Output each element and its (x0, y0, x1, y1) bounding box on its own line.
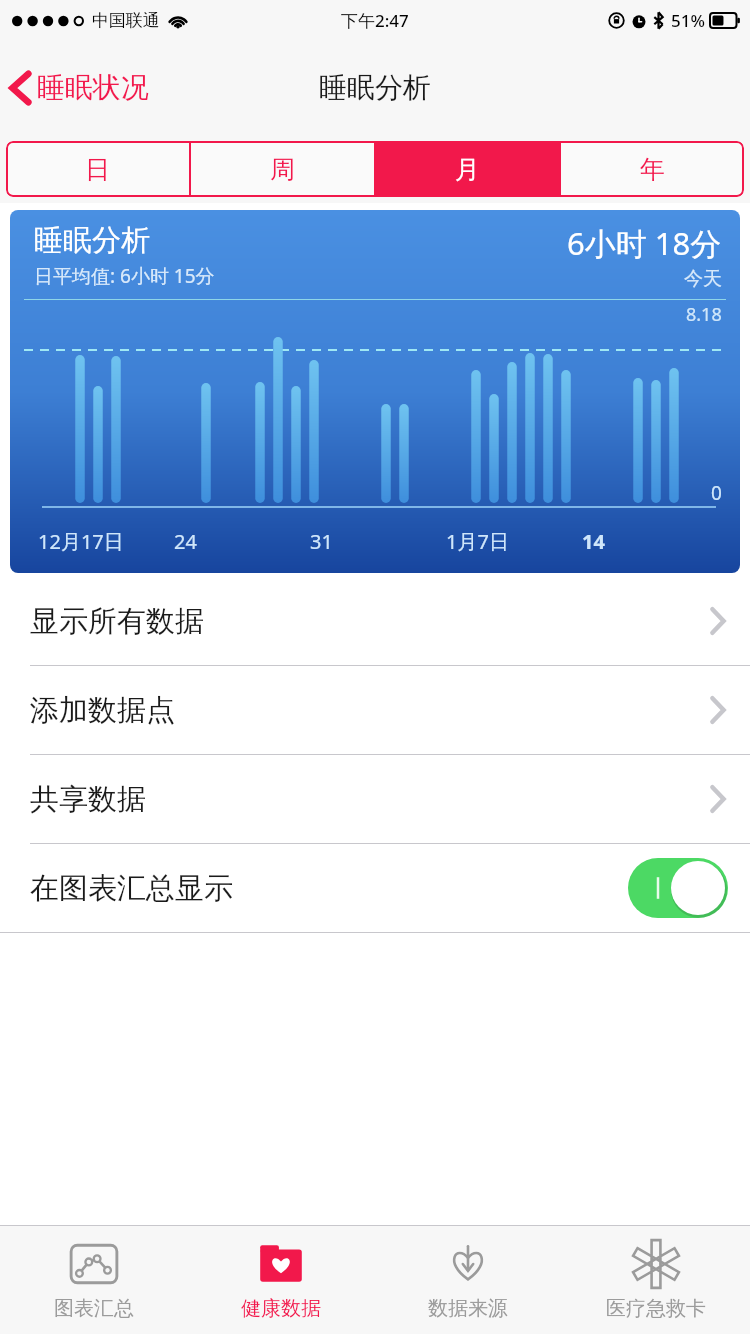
button[interactable]: 在图表汇总显示 (0, 844, 750, 932)
button[interactable]: 健康数据 (187, 1226, 374, 1334)
staticText: 51% (671, 9, 705, 32)
staticText: 图表汇总 (54, 1296, 134, 1321)
staticText: 24 (174, 528, 197, 555)
button[interactable]: 添加数据点 (0, 666, 750, 754)
staticText: 医疗急救卡 (606, 1296, 706, 1321)
staticText: 在图表汇总显示 (30, 870, 628, 907)
button[interactable]: 月 (376, 141, 559, 197)
button[interactable]: 睡眠状况 (0, 62, 163, 113)
button[interactable]: 在图表汇总显示开关 (628, 858, 728, 918)
button[interactable]: 图表汇总 (0, 1226, 187, 1334)
button[interactable]: 睡眠分析 (10, 210, 740, 573)
staticText: 周 (270, 154, 295, 185)
button[interactable]: 日 (6, 141, 189, 197)
staticText: 日 (85, 154, 110, 185)
staticText: 0 (711, 480, 722, 506)
staticText: 睡眠分析 (319, 70, 431, 105)
staticText: 6小时 18分 (567, 222, 722, 264)
staticText: 健康数据 (241, 1296, 321, 1321)
staticText: 睡眠状况 (37, 70, 149, 105)
staticText: 12月17日 (38, 528, 124, 555)
button[interactable]: 共享数据 (0, 755, 750, 843)
staticText: 31 (310, 528, 333, 555)
staticText: 年 (640, 154, 665, 185)
staticText: 中国联通 (92, 10, 160, 31)
button[interactable]: 显示所有数据 (0, 577, 750, 665)
staticText: 今天 (684, 267, 722, 291)
staticText: 8.18 (686, 302, 722, 327)
staticText: 下午2:47 (341, 9, 409, 32)
staticText: 1月7日 (446, 528, 509, 555)
staticText: 数据来源 (428, 1296, 508, 1321)
button[interactable]: 数据来源 (374, 1226, 562, 1334)
staticText: 月 (455, 154, 480, 185)
staticText: 日平均值: 6小时 15分 (34, 263, 215, 289)
staticText: 显示所有数据 (30, 603, 710, 640)
button[interactable]: 周 (191, 141, 374, 197)
staticText: 睡眠分析 (34, 222, 150, 259)
staticText: 共享数据 (30, 781, 710, 818)
button[interactable]: 年 (561, 141, 744, 197)
staticText: 14 (582, 528, 605, 555)
staticText: 添加数据点 (30, 692, 710, 729)
button[interactable]: 医疗急救卡 (562, 1226, 750, 1334)
